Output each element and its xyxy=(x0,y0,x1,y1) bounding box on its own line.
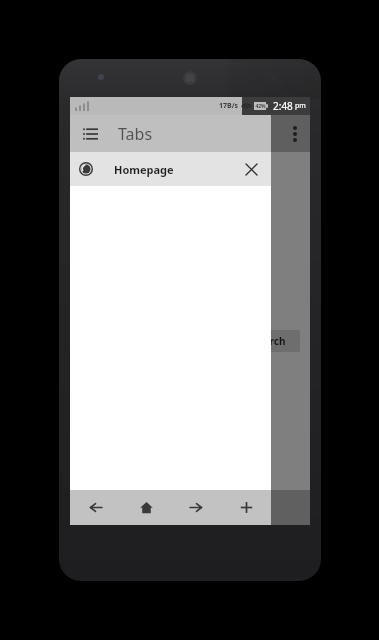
staticText: Tabs xyxy=(118,123,153,145)
button[interactable]: Search xyxy=(238,330,300,352)
button[interactable]: Homepage xyxy=(70,152,271,186)
button[interactable]: Home xyxy=(121,490,171,525)
button[interactable]: New tab xyxy=(221,490,271,525)
button[interactable]: Tab list xyxy=(75,115,105,152)
staticText: 2:48 xyxy=(273,99,293,113)
staticText: Homepage xyxy=(114,162,234,177)
staticText: pm xyxy=(295,101,306,111)
button[interactable]: More options xyxy=(280,115,310,152)
button[interactable]: Forward xyxy=(171,490,221,525)
button[interactable]: Close tab xyxy=(234,152,268,186)
staticText: 42% xyxy=(255,103,266,110)
button[interactable]: Back xyxy=(70,490,121,525)
staticText: 17B/s xyxy=(219,101,239,111)
staticText: Search xyxy=(252,334,286,348)
